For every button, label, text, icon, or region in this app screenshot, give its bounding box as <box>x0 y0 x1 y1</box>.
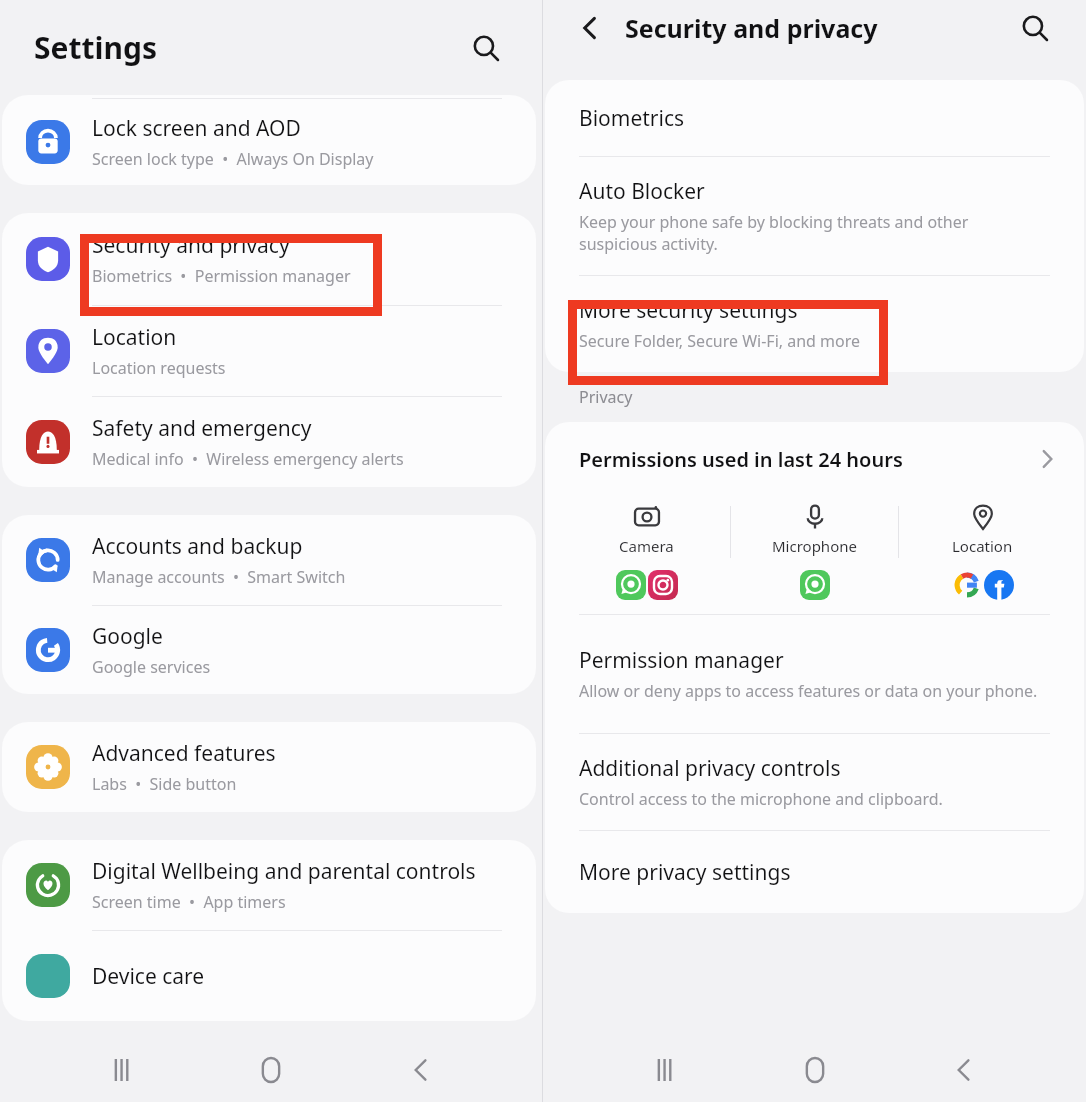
button[interactable]: Auto Blocker <box>545 157 1084 275</box>
button[interactable]: Location <box>899 496 1066 600</box>
staticText: Secure Folder, Secure Wi-Fi, and more <box>579 330 861 352</box>
button[interactable]: Search <box>460 22 512 74</box>
staticText: Allow or deny apps to access features or… <box>579 680 1038 702</box>
button[interactable]: Location <box>2 306 536 396</box>
staticText: Screen time • App timers <box>92 891 286 913</box>
staticText: Keep your phone safe by blocking threats… <box>579 211 1044 255</box>
staticText: Medical info • Wireless emergency alerts <box>92 448 404 470</box>
staticText: Settings <box>34 27 157 68</box>
staticText: Auto Blocker <box>579 177 705 206</box>
button[interactable]: Lock screen and AOD <box>2 99 536 185</box>
staticText: Location <box>952 536 1013 556</box>
staticText: Advanced features <box>92 739 276 768</box>
button[interactable]: Biometrics <box>545 80 1084 156</box>
button[interactable]: Safety and emergency <box>2 397 536 487</box>
button[interactable]: Permissions used in last 24 hours <box>545 422 1084 496</box>
staticText: Manage accounts • Smart Switch <box>92 566 346 588</box>
staticText: Privacy <box>579 386 633 408</box>
button[interactable]: Recents <box>94 1042 150 1098</box>
staticText: Camera <box>619 536 674 556</box>
button[interactable]: Home <box>243 1042 299 1098</box>
button[interactable]: Permission manager <box>545 615 1084 733</box>
staticText: Device care <box>92 962 205 991</box>
staticText: Control access to the microphone and cli… <box>579 788 943 810</box>
staticText: Additional privacy controls <box>579 754 841 783</box>
button[interactable]: Camera <box>563 496 730 600</box>
button[interactable]: Search <box>1010 3 1060 53</box>
button[interactable]: Device care <box>2 931 536 1021</box>
staticText: Labs • Side button <box>92 773 237 795</box>
button[interactable]: Google <box>2 606 536 694</box>
staticText: Microphone <box>772 536 857 556</box>
staticText: More security settings <box>579 296 798 325</box>
button[interactable]: Digital Wellbeing and parental controls <box>2 840 536 930</box>
button[interactable]: Back <box>567 5 613 51</box>
button[interactable]: Home <box>787 1042 843 1098</box>
staticText: Screen lock type • Always On Display <box>92 148 374 170</box>
staticText: Location <box>92 323 177 352</box>
staticText: Location requests <box>92 357 226 379</box>
button[interactable]: Advanced features <box>2 722 536 812</box>
staticText: Security and privacy <box>625 11 878 45</box>
staticText: Digital Wellbeing and parental controls <box>92 857 476 886</box>
staticText: Google services <box>92 656 211 678</box>
button[interactable]: Back <box>393 1042 449 1098</box>
button[interactable]: More privacy settings <box>545 831 1084 913</box>
staticText: Security and privacy <box>92 231 290 260</box>
button[interactable]: Additional privacy controls <box>545 734 1084 830</box>
button[interactable]: Accounts and backup <box>2 515 536 605</box>
staticText: Safety and emergency <box>92 414 312 443</box>
staticText: Lock screen and AOD <box>92 114 301 143</box>
button[interactable]: Recents <box>637 1042 693 1098</box>
button[interactable]: Microphone <box>731 496 898 600</box>
button[interactable]: Security and privacy <box>2 213 536 305</box>
staticText: Biometrics • Permission manager <box>92 265 351 287</box>
staticText: Google <box>92 622 163 651</box>
button[interactable]: More security settings <box>545 276 1084 372</box>
staticText: Accounts and backup <box>92 532 303 561</box>
button[interactable]: Back <box>936 1042 992 1098</box>
staticText: More privacy settings <box>579 858 791 887</box>
staticText: Biometrics <box>579 104 685 133</box>
staticText: Permissions used in last 24 hours <box>579 446 1038 473</box>
staticText: Permission manager <box>579 646 784 675</box>
